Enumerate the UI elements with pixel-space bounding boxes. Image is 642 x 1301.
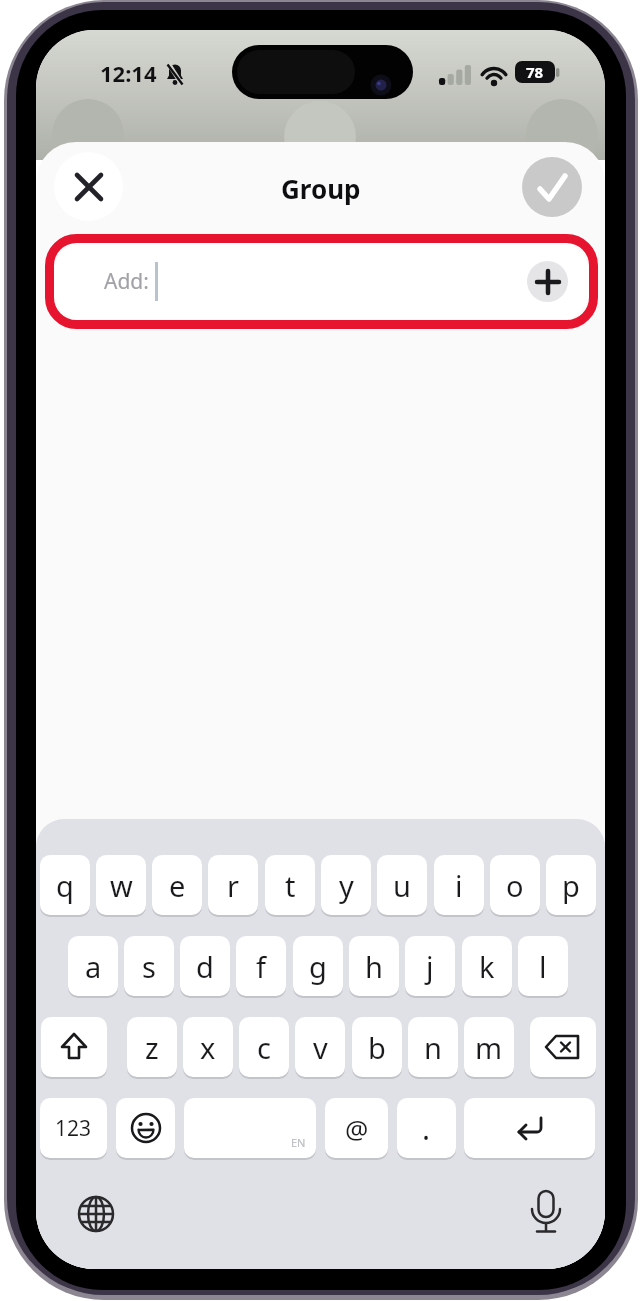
button[interactable]: 123 bbox=[40, 1098, 107, 1158]
button[interactable] bbox=[530, 1017, 596, 1077]
staticText: g bbox=[309, 947, 327, 986]
staticText: p bbox=[562, 866, 580, 905]
button[interactable]: i bbox=[434, 855, 484, 915]
staticText: Add: bbox=[104, 267, 149, 296]
button[interactable]: @ bbox=[325, 1098, 388, 1158]
staticText: j bbox=[426, 947, 434, 986]
staticText: b bbox=[368, 1028, 386, 1067]
button[interactable]: n bbox=[408, 1017, 458, 1077]
button[interactable] bbox=[116, 1098, 175, 1158]
staticText: m bbox=[475, 1028, 503, 1067]
button[interactable]: f bbox=[236, 936, 286, 996]
staticText: a bbox=[85, 947, 102, 986]
staticText: s bbox=[142, 947, 156, 986]
button[interactable]: w bbox=[96, 855, 146, 915]
button[interactable] bbox=[522, 157, 582, 217]
button[interactable]: . bbox=[397, 1098, 456, 1158]
button[interactable]: b bbox=[352, 1017, 402, 1077]
button[interactable]: a bbox=[68, 936, 118, 996]
button[interactable]: h bbox=[349, 936, 399, 996]
button[interactable]: y bbox=[321, 855, 371, 915]
button[interactable]: EN bbox=[184, 1098, 316, 1158]
staticText: @ bbox=[345, 1111, 369, 1146]
button[interactable]: d bbox=[180, 936, 230, 996]
button[interactable]: v bbox=[295, 1017, 345, 1077]
staticText: u bbox=[393, 866, 411, 905]
staticText: 12:14 bbox=[100, 58, 157, 88]
button[interactable]: q bbox=[40, 855, 90, 915]
staticText: 123 bbox=[55, 1114, 92, 1143]
staticText: h bbox=[365, 947, 383, 986]
button[interactable]: t bbox=[265, 855, 315, 915]
button[interactable]: j bbox=[405, 936, 455, 996]
button[interactable]: c bbox=[239, 1017, 289, 1077]
button[interactable]: g bbox=[293, 936, 343, 996]
staticText: z bbox=[145, 1028, 159, 1067]
staticText: q bbox=[56, 866, 74, 905]
staticText: k bbox=[479, 947, 495, 986]
button[interactable] bbox=[527, 261, 568, 302]
button[interactable] bbox=[41, 1017, 107, 1077]
button[interactable]: e bbox=[152, 855, 202, 915]
staticText: v bbox=[313, 1028, 328, 1067]
button[interactable] bbox=[74, 1192, 118, 1236]
staticText: x bbox=[200, 1028, 216, 1067]
button[interactable] bbox=[51, 240, 591, 323]
button[interactable]: m bbox=[464, 1017, 514, 1077]
button[interactable]: r bbox=[208, 855, 258, 915]
staticText: d bbox=[196, 947, 214, 986]
staticText: 78 bbox=[526, 62, 544, 82]
staticText: i bbox=[455, 866, 463, 905]
button[interactable]: u bbox=[377, 855, 427, 915]
button[interactable] bbox=[54, 152, 123, 221]
staticText: n bbox=[424, 1028, 442, 1067]
staticText: EN bbox=[291, 1135, 306, 1150]
button[interactable]: o bbox=[490, 855, 540, 915]
button[interactable] bbox=[464, 1098, 595, 1158]
staticText: o bbox=[506, 866, 524, 905]
button[interactable]: x bbox=[183, 1017, 233, 1077]
staticText: f bbox=[256, 947, 266, 986]
staticText: l bbox=[539, 947, 547, 986]
button[interactable]: z bbox=[127, 1017, 177, 1077]
staticText: Group bbox=[281, 171, 361, 206]
staticText: . bbox=[422, 1108, 431, 1149]
staticText: t bbox=[285, 866, 296, 905]
staticText: r bbox=[227, 866, 239, 905]
button[interactable]: p bbox=[546, 855, 596, 915]
button[interactable]: s bbox=[124, 936, 174, 996]
staticText: y bbox=[339, 866, 354, 905]
button[interactable]: l bbox=[518, 936, 568, 996]
button[interactable]: k bbox=[462, 936, 512, 996]
staticText: w bbox=[110, 866, 133, 905]
staticText: e bbox=[169, 866, 186, 905]
staticText: c bbox=[257, 1028, 271, 1067]
button[interactable] bbox=[524, 1188, 568, 1238]
